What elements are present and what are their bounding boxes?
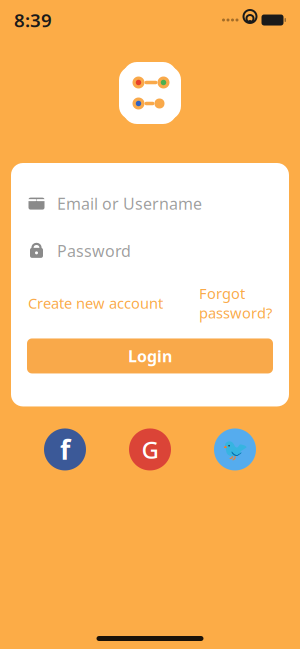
button[interactable]: Sign in with Twitter: [214, 428, 256, 470]
staticText: f: [60, 432, 70, 467]
staticText: Password: [57, 240, 131, 261]
staticText: Forgot password?: [199, 283, 272, 322]
staticText: 8:39: [14, 8, 52, 32]
button[interactable]: Login: [27, 338, 273, 373]
staticText: G: [141, 433, 158, 465]
staticText: Email or Username: [57, 193, 202, 214]
button[interactable]: Create new account: [28, 293, 163, 313]
button[interactable]: Forgot password?: [199, 283, 272, 322]
staticText: Create new account: [28, 293, 163, 313]
staticText: 🐦: [221, 437, 248, 462]
button[interactable]: Sign in with Google: [129, 428, 171, 470]
button[interactable]: Sign in with Facebook: [44, 428, 86, 470]
staticText: Login: [128, 345, 172, 366]
